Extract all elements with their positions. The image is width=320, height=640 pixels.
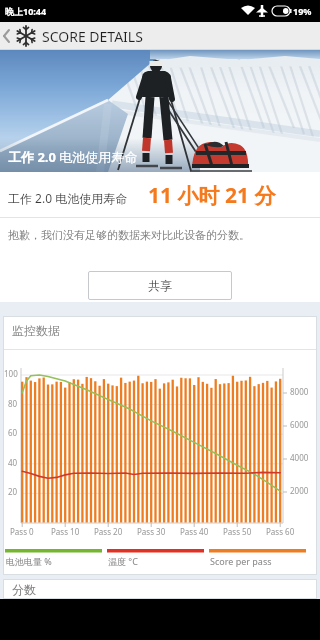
staticText: 8000: [290, 386, 309, 397]
staticText: Pass 50: [223, 526, 252, 537]
staticText: 60: [8, 427, 18, 438]
staticText: SCORE DETAILS: [42, 27, 143, 46]
staticText: Pass 40: [180, 526, 209, 537]
staticText: Pass 30: [137, 526, 166, 537]
staticText: Pass 0: [10, 526, 34, 537]
staticText: Pass 20: [94, 526, 123, 537]
staticText: 11 小时 21 分: [148, 181, 276, 210]
staticText: 抱歉，我们没有足够的数据来对比此设备的分数。: [8, 228, 250, 242]
staticText: Score per pass: [210, 555, 272, 567]
staticText: 工作 2.0 电池使用寿命: [8, 148, 138, 166]
staticText: 19%: [293, 5, 312, 17]
staticText: 晚上10:44: [5, 5, 47, 17]
staticText: 4000: [290, 452, 309, 463]
staticText: 20: [8, 486, 18, 497]
staticText: 共享: [148, 278, 172, 293]
staticText: 温度 °C: [108, 555, 138, 567]
staticText: 2000: [290, 485, 309, 496]
button[interactable]: 分数: [3, 579, 317, 599]
staticText: Pass 10: [51, 526, 80, 537]
staticText: 6000: [290, 419, 309, 430]
staticText: 工作 2.0 电池使用寿命: [8, 190, 128, 206]
staticText: 80: [8, 398, 18, 409]
button[interactable]: 共享: [88, 271, 232, 300]
staticText: 监控数据: [12, 323, 60, 338]
staticText: 100: [4, 368, 18, 379]
staticText: Pass 60: [266, 526, 295, 537]
staticText: 分数: [12, 582, 36, 597]
staticText: 40: [8, 457, 18, 468]
staticText: 电池电量 %: [6, 555, 52, 567]
button[interactable]: SCORE DETAILS: [0, 22, 143, 50]
